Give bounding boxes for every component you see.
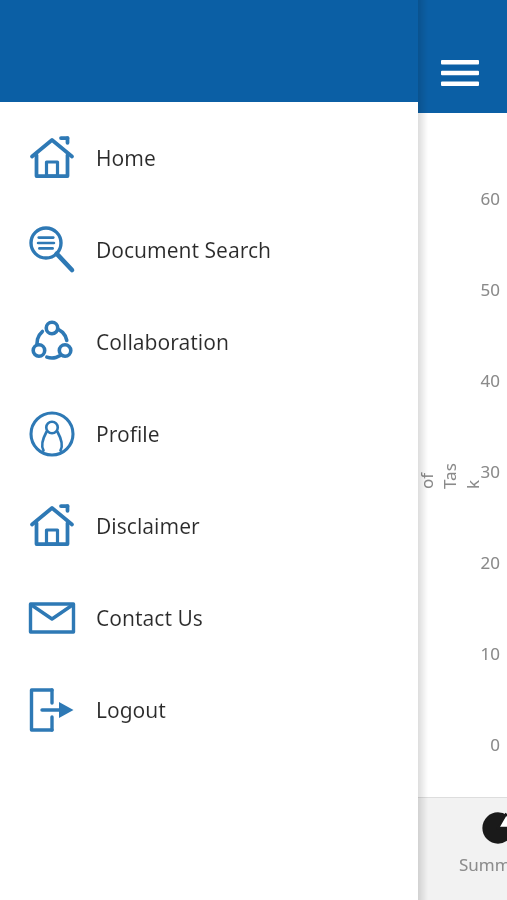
button[interactable]: Home (0, 112, 418, 204)
button[interactable]: Profile (0, 388, 418, 480)
staticText: Collaboration (96, 328, 229, 357)
staticText: 20 (470, 551, 500, 574)
button[interactable]: Open navigation menu (434, 52, 486, 94)
staticText: No of Task (392, 461, 484, 489)
staticText: 40 (470, 369, 500, 392)
button[interactable]: Disclaimer (0, 480, 418, 572)
staticText: Summary (459, 853, 507, 876)
staticText: Home (96, 144, 156, 173)
staticText: 60 (470, 187, 500, 210)
staticText: Document Search (96, 236, 272, 265)
staticText: Profile (96, 420, 160, 449)
staticText: 10 (470, 642, 500, 665)
button[interactable]: Collaboration (0, 296, 418, 388)
staticText: 30 (470, 460, 500, 483)
staticText: Disclaimer (96, 512, 200, 541)
staticText: 0 (470, 733, 500, 756)
button[interactable]: Contact Us (0, 572, 418, 664)
staticText: Contact Us (96, 604, 203, 633)
button[interactable]: Summary (455, 811, 507, 876)
button[interactable]: Document Search (0, 204, 418, 296)
staticText: 50 (470, 278, 500, 301)
button[interactable]: Logout (0, 664, 418, 756)
staticText: Logout (96, 696, 166, 725)
